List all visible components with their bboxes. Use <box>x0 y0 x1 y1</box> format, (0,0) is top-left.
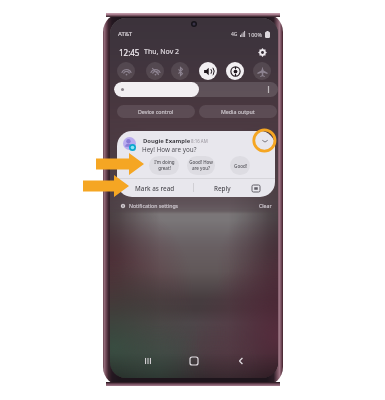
button[interactable]: Mark as read <box>131 179 179 197</box>
button[interactable]: Wi-Fi <box>117 62 135 80</box>
button[interactable]: Mobile data <box>146 62 164 80</box>
button[interactable]: Settings <box>255 45 269 59</box>
button[interactable]: Notification settings <box>117 202 182 209</box>
staticText: I'm doing great! <box>154 159 175 172</box>
staticText: 8:16 AM <box>191 138 208 144</box>
button[interactable]: Good! How are you? <box>187 156 215 175</box>
staticText: Good! <box>234 163 247 169</box>
staticText: Hey! How are you? <box>142 145 197 154</box>
button[interactable]: Bluetooth <box>171 62 189 80</box>
button[interactable]: Device control <box>117 105 195 118</box>
button[interactable]: Recent apps <box>139 352 157 370</box>
button[interactable]: I'm doing great! <box>149 156 179 175</box>
staticText: Clear <box>259 202 272 209</box>
button[interactable]: Brightness <box>114 82 278 97</box>
button[interactable]: Auto rotate <box>226 62 244 80</box>
staticText: AT&T <box>118 30 133 38</box>
button[interactable]: Sound <box>199 62 217 80</box>
staticText: 4G <box>231 31 238 38</box>
button[interactable]: Media output <box>199 105 277 118</box>
staticText: Thu, Nov 2 <box>144 47 180 57</box>
button[interactable]: Back <box>232 352 250 370</box>
button[interactable]: Expand notification <box>258 134 272 148</box>
staticText: Notification settings <box>129 202 179 209</box>
button[interactable]: Reply <box>207 179 238 197</box>
staticText: Good! How are you? <box>189 159 213 172</box>
button[interactable]: Open conversation <box>249 181 263 195</box>
staticText: Dougie Example <box>143 137 191 145</box>
staticText: Reply <box>214 184 231 193</box>
button[interactable]: Clear <box>256 202 275 209</box>
staticText: Media output <box>221 108 255 115</box>
button[interactable]: Home <box>185 352 203 370</box>
staticText: 100% <box>248 31 263 38</box>
staticText: 12:45 <box>119 47 140 58</box>
button[interactable]: Airplane mode <box>253 62 271 80</box>
button[interactable]: Good! <box>230 156 250 175</box>
staticText: Mark as read <box>135 184 175 193</box>
staticText: Device control <box>138 108 174 115</box>
